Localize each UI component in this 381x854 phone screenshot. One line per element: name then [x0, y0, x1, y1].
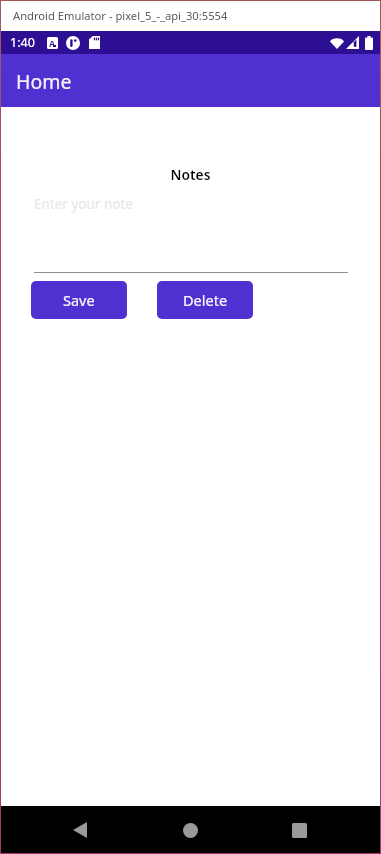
button[interactable]: Home [1, 54, 380, 107]
staticText: Android Emulator - pixel_5_-_api_30:5554 [13, 8, 228, 23]
button[interactable]: Recent apps [281, 812, 317, 848]
staticText: A [49, 37, 56, 48]
staticText: Home [16, 68, 72, 95]
staticText: Save [63, 290, 95, 310]
button[interactable]: Back [62, 812, 98, 848]
button[interactable]: Home [172, 812, 208, 848]
staticText: 1:40 [10, 34, 35, 51]
staticText: Delete [183, 290, 228, 310]
button[interactable]: Enter your note [34, 195, 348, 273]
button[interactable]: Save [31, 281, 127, 319]
staticText: Notes [1, 165, 380, 184]
button[interactable]: Delete [157, 281, 253, 319]
staticText: Enter your note [34, 195, 133, 213]
